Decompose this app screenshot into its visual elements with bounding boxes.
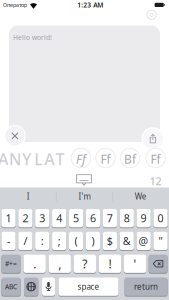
button[interactable]: - xyxy=(1,232,16,250)
staticText: Hello world! xyxy=(13,33,52,42)
button[interactable] xyxy=(24,277,38,296)
button[interactable]: 3 xyxy=(35,209,49,227)
staticText: L xyxy=(34,148,43,170)
staticText: Ff xyxy=(100,151,110,167)
staticText: Ff xyxy=(76,151,86,167)
staticText: @ xyxy=(139,234,149,248)
button[interactable]: ABC xyxy=(1,277,21,296)
staticText: " xyxy=(158,234,162,248)
button[interactable]: @ xyxy=(136,232,151,250)
button[interactable]: We xyxy=(114,188,168,205)
staticText: N xyxy=(9,148,21,170)
staticText: Y xyxy=(22,148,31,170)
button[interactable]: 9 xyxy=(136,209,151,227)
staticText: A xyxy=(0,148,8,170)
staticText: space xyxy=(77,281,99,292)
button[interactable]: Ff xyxy=(96,148,115,167)
staticText: : xyxy=(41,234,44,248)
staticText: I xyxy=(27,191,30,202)
staticText: 4 xyxy=(56,211,62,225)
button[interactable] xyxy=(146,9,157,20)
staticText: I'm xyxy=(78,191,90,202)
button[interactable]: Ff xyxy=(71,148,90,167)
staticText: ; xyxy=(58,234,61,248)
staticText: 12 xyxy=(149,174,161,188)
button[interactable]: ) xyxy=(86,232,100,250)
staticText: #+= xyxy=(5,259,17,268)
staticText: 6 xyxy=(90,211,96,225)
button[interactable] xyxy=(42,277,55,296)
staticText: 3 xyxy=(39,211,45,225)
button[interactable]: , xyxy=(49,255,71,273)
staticText: ( xyxy=(75,234,78,248)
staticText: , xyxy=(58,256,61,272)
button[interactable]: : xyxy=(35,232,49,250)
staticText: ' xyxy=(134,256,137,272)
staticText: Ff xyxy=(150,151,160,167)
button[interactable] xyxy=(141,127,164,150)
staticText: 2 xyxy=(22,211,28,225)
staticText: 7 xyxy=(107,211,113,225)
button[interactable]: return xyxy=(124,277,168,296)
button[interactable]: 0 xyxy=(153,209,168,227)
button[interactable]: ? xyxy=(74,255,96,273)
staticText: 8 xyxy=(124,211,130,225)
staticText: T xyxy=(55,148,64,170)
button[interactable] xyxy=(149,255,168,273)
button[interactable]: . xyxy=(23,255,46,273)
button[interactable]: space xyxy=(58,277,118,296)
staticText: 5 xyxy=(73,211,79,225)
button[interactable]: ; xyxy=(52,232,66,250)
staticText: ABC xyxy=(5,282,17,291)
staticText: ? xyxy=(82,256,87,272)
staticText: ) xyxy=(91,234,94,248)
button[interactable]: 7 xyxy=(103,209,117,227)
button[interactable]: " xyxy=(153,232,168,250)
button[interactable]: 2 xyxy=(18,209,32,227)
staticText: We xyxy=(135,191,147,202)
staticText: A xyxy=(44,148,54,170)
button[interactable]: 4 xyxy=(52,209,66,227)
button[interactable]: Bf xyxy=(120,148,139,167)
button[interactable]: 1 xyxy=(1,209,16,227)
staticText: 1:23 AM xyxy=(77,1,103,9)
button[interactable]: I xyxy=(1,188,55,205)
staticText: 0 xyxy=(157,211,163,225)
button[interactable]: #+= xyxy=(1,255,21,273)
staticText: . xyxy=(33,256,36,272)
staticText: $ xyxy=(107,234,113,248)
button[interactable]: / xyxy=(18,232,32,250)
button[interactable]: ' xyxy=(124,255,146,273)
button[interactable]: 8 xyxy=(120,209,134,227)
button[interactable]: $ xyxy=(103,232,117,250)
staticText: Оператор xyxy=(3,1,27,9)
button[interactable]: I'm xyxy=(57,188,111,205)
staticText: 1 xyxy=(5,211,11,225)
staticText: Bf xyxy=(124,151,136,167)
staticText: ! xyxy=(108,256,111,272)
button[interactable] xyxy=(75,174,93,186)
staticText: return xyxy=(134,281,158,292)
button[interactable]: Ff xyxy=(146,148,165,167)
staticText: / xyxy=(23,234,27,248)
button[interactable]: ( xyxy=(69,232,83,250)
button[interactable]: & xyxy=(120,232,134,250)
button[interactable] xyxy=(4,125,26,147)
button[interactable]: 5 xyxy=(69,209,83,227)
button[interactable]: ! xyxy=(99,255,121,273)
staticText: 9 xyxy=(141,211,147,225)
button[interactable]: 6 xyxy=(86,209,100,227)
staticText: - xyxy=(7,234,10,248)
staticText: & xyxy=(123,234,131,248)
